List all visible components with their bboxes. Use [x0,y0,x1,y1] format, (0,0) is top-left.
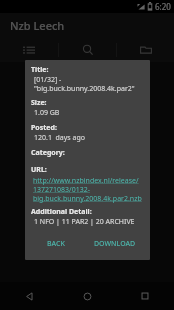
button[interactable]: BACK [43,236,69,252]
staticText: [01/32] - "big.buck.bunny.2008.4k.par2" [34,75,144,93]
button[interactable]: Recents [116,282,174,310]
staticText: Size: [31,98,47,108]
button[interactable]: Downloads [0,38,58,62]
staticText: Category: [31,148,65,158]
button[interactable]: http://www.nzbindex.nl/release/137271083… [33,176,144,203]
staticText: URL: [31,165,47,175]
button[interactable]: DOWNLOAD [90,236,140,252]
staticText: Posted: [31,123,57,133]
staticText: BACK [47,239,65,249]
button[interactable]: Search [59,38,116,62]
button[interactable]: Back [0,282,58,310]
staticText: 1.09 GB [34,108,60,118]
button[interactable]: Files [117,38,174,62]
button[interactable]: Home [58,282,116,310]
staticText: DOWNLOAD [94,239,136,249]
staticText: 120.1 days ago [34,133,85,143]
staticText: Additional Detail: [31,207,92,217]
staticText: 6:20 [155,1,171,12]
staticText: Nzb Leech [10,18,65,33]
staticText: Title: [31,65,49,75]
staticText: 1 NFO | 11 PAR2 | 20 ARCHIVE [34,217,135,227]
